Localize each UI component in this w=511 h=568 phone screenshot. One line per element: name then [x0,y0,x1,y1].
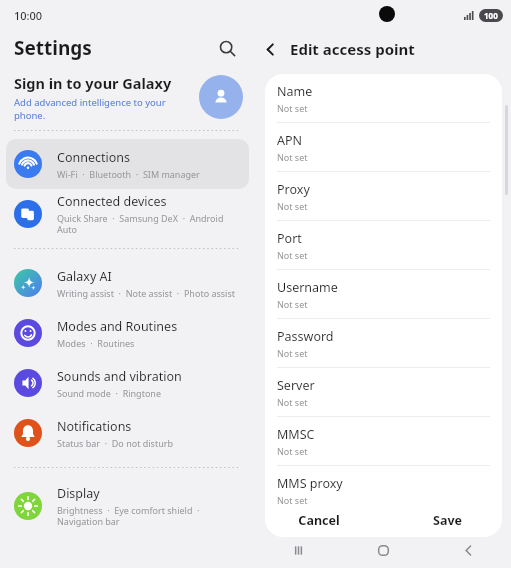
button[interactable]: Server [265,368,502,416]
staticText: Wi-Fi · Bluetooth · SIM manager [57,168,200,180]
staticText: 10:00 [14,8,43,23]
button[interactable]: MMSC [265,417,502,465]
staticText: Server [277,377,315,394]
button[interactable]: Name [265,74,502,122]
staticText: Not set [277,396,308,408]
staticText: Not set [277,298,308,310]
staticText: Name [277,83,313,100]
staticText: Modes · Routines [57,337,135,349]
staticText: Status bar · Do not disturb [57,437,173,449]
staticText: Not set [277,347,308,359]
staticText: Sign in to your Galaxy [14,73,172,93]
button[interactable]: Username [265,270,502,318]
staticText: Port [277,230,302,247]
button[interactable]: Galaxy AI [6,258,249,308]
staticText: Sounds and vibration [57,368,182,385]
button[interactable]: Save [383,500,511,540]
staticText: Not set [277,445,308,457]
staticText: Connections [57,149,130,166]
button[interactable]: APN [265,123,502,171]
staticText: Settings [14,35,92,61]
staticText: Not set [277,200,308,212]
button[interactable]: Display [6,477,249,535]
button[interactable]: Notifications [6,408,249,458]
button[interactable]: Password [265,319,502,367]
staticText: Not set [277,102,308,114]
staticText: Username [277,279,338,296]
staticText: MMS proxy [277,475,343,492]
button[interactable]: Back [255,34,285,64]
staticText: Galaxy AI [57,268,112,285]
staticText: Not set [277,151,308,163]
staticText: 100 [484,10,498,21]
staticText: Display [57,485,100,502]
staticText: Notifications [57,418,132,435]
button[interactable]: Cancel [255,500,383,540]
button[interactable]: Back [426,532,511,568]
staticText: Not set [277,249,308,261]
button[interactable]: Home [341,532,426,568]
staticText: Add advanced intelligence to your phone. [14,96,199,122]
staticText: Brightness · Eye comfort shield · Naviga… [57,504,241,528]
staticText: Writing assist · Note assist · Photo ass… [57,287,235,299]
staticText: Password [277,328,334,345]
staticText: Sound mode · Ringtone [57,387,161,399]
staticText: Quick Share · Samsung DeX · Android Auto [57,212,241,236]
button[interactable]: Sounds and vibration [6,358,249,408]
button[interactable]: MMS proxy [265,466,502,514]
staticText: Connected devices [57,193,167,210]
staticText: MMSC [277,426,315,443]
staticText: APN [277,132,303,149]
staticText: Save [433,512,462,529]
button[interactable]: Modes and Routines [6,308,249,358]
button[interactable]: Recents [255,532,341,568]
staticText: Edit access point [290,39,415,59]
staticText: Proxy [277,181,310,198]
staticText: Not set [277,494,308,506]
button[interactable]: Search [211,32,243,64]
button[interactable]: Sign in to your Galaxy [0,66,255,128]
staticText: Cancel [298,512,340,529]
button[interactable]: Connections [6,139,249,189]
button[interactable]: Proxy [265,172,502,220]
button[interactable]: Port [265,221,502,269]
staticText: Modes and Routines [57,318,178,335]
button[interactable]: Connected devices [6,189,249,239]
